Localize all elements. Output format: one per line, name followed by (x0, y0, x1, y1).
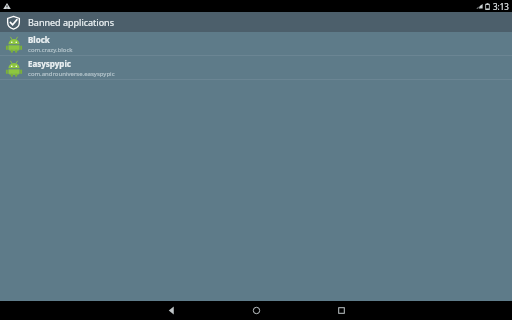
staticText: com.crazy.block (28, 46, 73, 54)
button[interactable]: Block (0, 32, 512, 55)
button[interactable]: Back (129, 301, 214, 320)
button[interactable]: Banned applications (0, 12, 512, 32)
other: Banned applications (6, 15, 21, 30)
staticText: Banned applications (28, 16, 114, 28)
button[interactable]: Recent apps (299, 301, 384, 320)
button[interactable]: Easyspypic (0, 56, 512, 79)
staticText: Easyspypic (28, 58, 71, 69)
staticText: com.androuniverse.easyspypic (28, 70, 115, 78)
staticText: Block (28, 34, 50, 45)
button[interactable]: Home (214, 301, 299, 320)
staticText: 3:13 (493, 1, 509, 12)
